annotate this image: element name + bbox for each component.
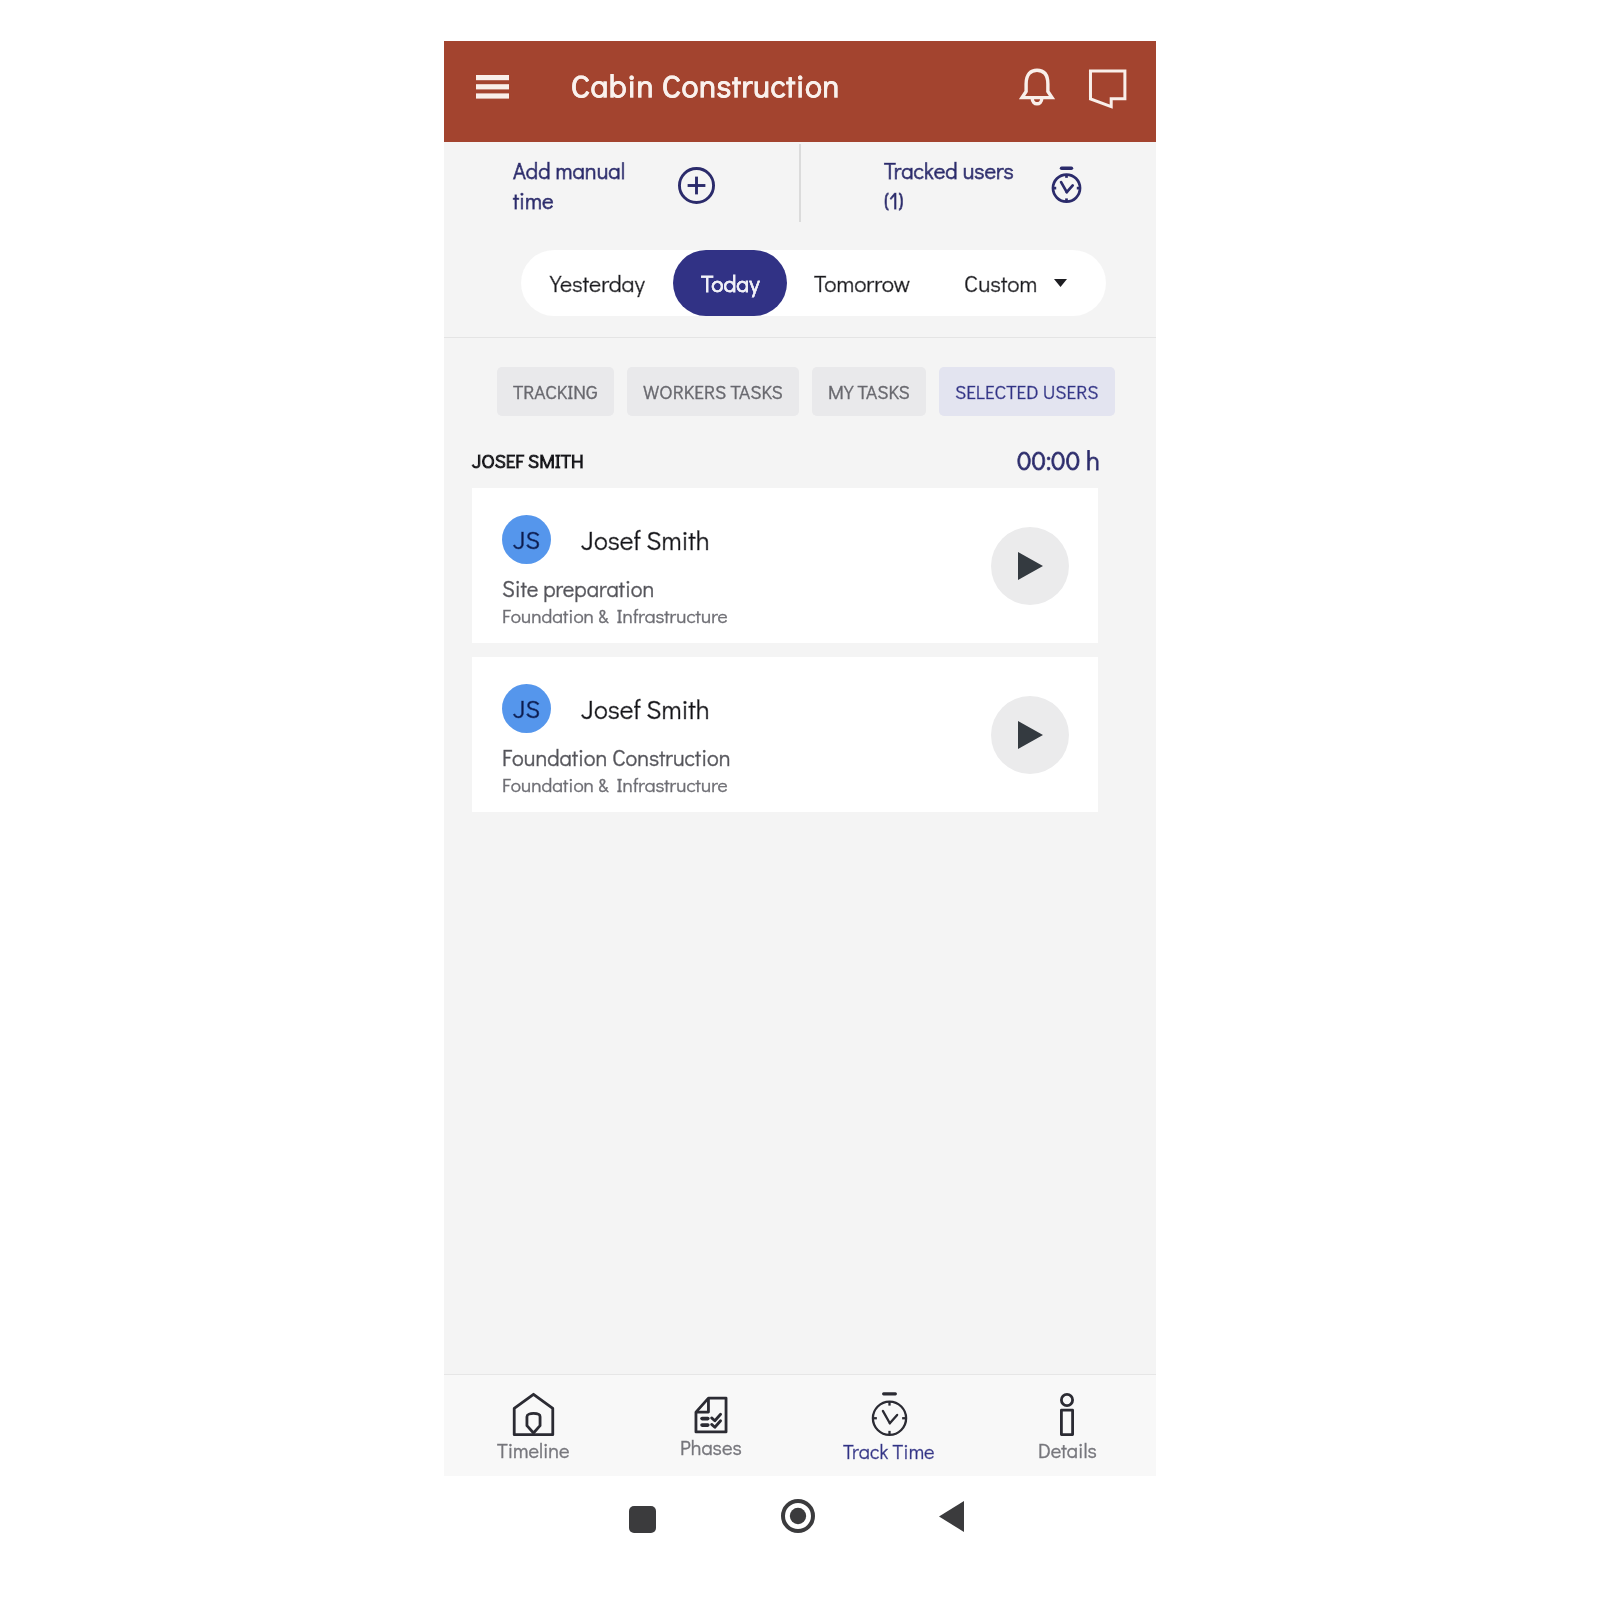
staticText: Track Time <box>843 1438 935 1464</box>
staticText: SELECTED USERS <box>955 379 1099 404</box>
button[interactable]: SELECTED USERS <box>939 367 1115 416</box>
staticText: JOSEF SMITH <box>472 448 584 473</box>
staticText: TRACKING <box>513 379 598 404</box>
button[interactable]: MY TASKS <box>812 367 926 416</box>
staticText: Custom <box>964 268 1038 298</box>
staticText: Yesterday <box>550 268 645 298</box>
button[interactable]: Home <box>781 1499 815 1533</box>
button[interactable]: JS <box>472 488 1098 643</box>
staticText: WORKERS TASKS <box>643 379 783 404</box>
staticText: Tracked users (1) <box>884 156 1014 215</box>
staticText: Josef Smith <box>581 692 710 726</box>
staticText: Foundation & Infrastructure <box>502 603 728 628</box>
staticText: SELECTED USERS <box>955 379 1099 404</box>
button[interactable]: Track Time <box>800 1375 978 1476</box>
staticText: Timeline <box>497 1437 570 1463</box>
staticText: Foundation Construction <box>502 743 731 772</box>
staticText: Add manual time <box>513 156 626 215</box>
button[interactable]: JS <box>472 657 1098 812</box>
button[interactable]: Tracked users (1) <box>801 142 1156 228</box>
staticText: Tracked users (1) <box>884 156 1014 215</box>
button[interactable]: Yesterday <box>521 250 673 316</box>
staticText: JS <box>513 523 540 556</box>
button[interactable]: Back <box>939 1501 964 1532</box>
staticText: Details <box>1038 1437 1097 1463</box>
staticText: JS <box>513 692 540 725</box>
button[interactable]: Start timer <box>991 696 1069 774</box>
staticText: Phases <box>680 1434 742 1460</box>
button[interactable]: Phases <box>622 1375 800 1476</box>
staticText: Josef Smith <box>581 523 710 557</box>
button[interactable]: Notifications <box>1001 56 1073 128</box>
button[interactable]: Details <box>978 1375 1156 1476</box>
staticText: 00:00 h <box>1017 443 1100 477</box>
staticText: MY TASKS <box>828 379 910 404</box>
button[interactable]: WORKERS TASKS <box>627 367 799 416</box>
button[interactable]: Custom <box>938 250 1106 316</box>
staticText: Track Time <box>843 1438 935 1464</box>
staticText: Foundation & Infrastructure <box>502 772 728 797</box>
button[interactable]: Menu <box>456 56 528 128</box>
button[interactable]: Timeline <box>444 1375 622 1476</box>
staticText: 00:00 h <box>1017 443 1100 477</box>
staticText: Custom <box>964 268 1038 298</box>
button[interactable]: Tomorrow <box>787 250 938 316</box>
button[interactable]: TRACKING <box>497 367 614 416</box>
staticText: Timeline <box>497 1437 570 1463</box>
staticText: Details <box>1038 1437 1097 1463</box>
staticText: WORKERS TASKS <box>643 379 783 404</box>
staticText: Foundation & Infrastructure <box>502 603 728 628</box>
button[interactable]: Start timer <box>991 527 1069 605</box>
button[interactable]: Recents <box>629 1506 656 1533</box>
button[interactable]: Add manual time <box>444 142 799 228</box>
button[interactable]: Messages <box>1073 56 1145 128</box>
staticText: Josef Smith <box>581 523 710 557</box>
staticText: Add manual time <box>513 156 626 215</box>
staticText: JS <box>513 692 540 725</box>
staticText: Tomorrow <box>814 268 911 298</box>
staticText: Foundation Construction <box>502 743 731 772</box>
staticText: Today <box>701 268 760 298</box>
staticText: Today <box>701 268 760 298</box>
staticText: JOSEF SMITH <box>472 448 584 473</box>
staticText: Site preparation <box>502 574 655 603</box>
staticText: MY TASKS <box>828 379 910 404</box>
button[interactable]: Today <box>673 250 787 316</box>
staticText: Foundation & Infrastructure <box>502 772 728 797</box>
staticText: TRACKING <box>513 379 598 404</box>
staticText: Yesterday <box>550 268 645 298</box>
staticText: Cabin Construction <box>571 65 841 106</box>
staticText: JS <box>513 523 540 556</box>
staticText: Cabin Construction <box>571 65 841 106</box>
staticText: Josef Smith <box>581 692 710 726</box>
staticText: Phases <box>680 1434 742 1460</box>
staticText: Site preparation <box>502 574 655 603</box>
staticText: Tomorrow <box>814 268 911 298</box>
